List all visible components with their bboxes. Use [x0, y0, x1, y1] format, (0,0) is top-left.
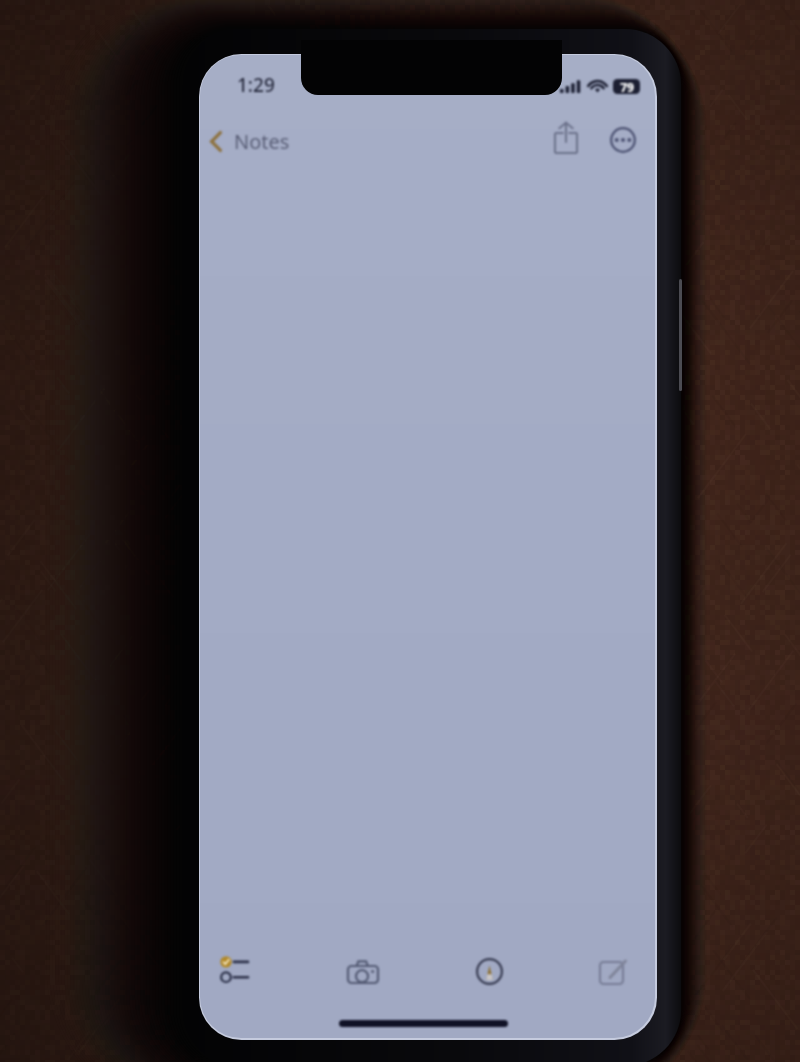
- button[interactable]: New note: [589, 948, 637, 996]
- button[interactable]: Checklist: [210, 946, 258, 994]
- button[interactable]: More options: [604, 121, 642, 159]
- staticText: 1:29: [237, 72, 275, 98]
- button[interactable]: Share: [546, 113, 586, 162]
- button[interactable]: Camera: [339, 948, 387, 996]
- button[interactable]: Markup: [465, 947, 513, 995]
- button[interactable]: Notes: [202, 123, 298, 160]
- staticText: Notes: [234, 128, 290, 155]
- staticText: 79: [620, 79, 634, 94]
